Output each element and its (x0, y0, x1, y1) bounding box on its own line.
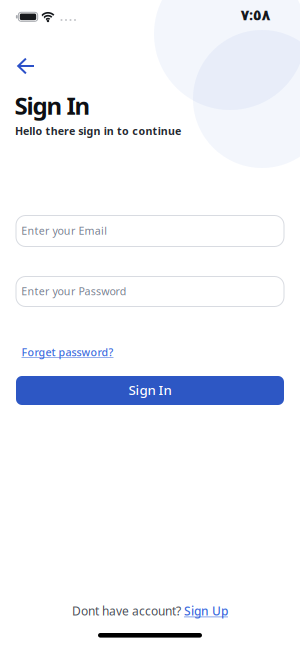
button[interactable]: Back (4, 46, 44, 86)
staticText: Hello there sign in to continue (15, 124, 181, 138)
button[interactable]: Enter your Email (16, 215, 284, 246)
staticText: Enter your Password (21, 284, 127, 298)
staticText: Sign In (14, 89, 90, 121)
staticText: Enter your Email (21, 223, 107, 238)
staticText: Dont have account? (72, 603, 181, 619)
button[interactable]: Sign In (16, 376, 284, 405)
button[interactable]: Enter your Password (16, 276, 284, 306)
staticText: ٧:٥٨ (240, 5, 270, 24)
staticText: Sign In (128, 381, 171, 399)
staticText: Sign Up (184, 603, 228, 619)
button[interactable]: Forget password? (21, 345, 113, 359)
button[interactable]: Sign Up (184, 603, 228, 619)
staticText: Forget password? (21, 345, 113, 359)
